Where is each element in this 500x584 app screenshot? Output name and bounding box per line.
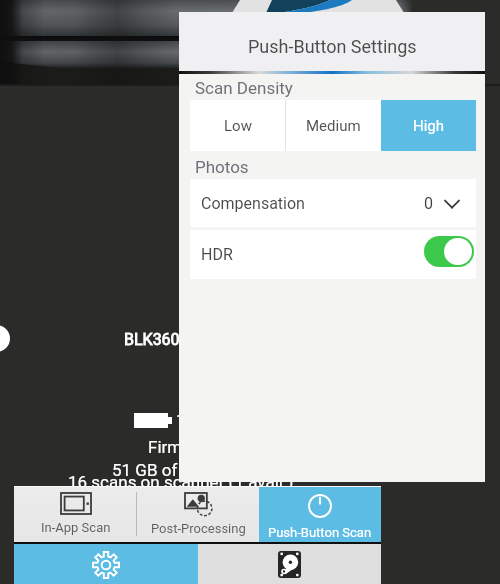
button[interactable]: Push-Button Scan [259, 486, 381, 542]
button[interactable]: HDR toggle [424, 236, 474, 267]
button[interactable]: Compensation [190, 179, 476, 227]
staticText: HDR [201, 245, 233, 264]
staticText: BLK3600 [124, 330, 189, 349]
staticText: Post-Processing [151, 521, 246, 536]
staticText: 0 [424, 194, 433, 213]
button[interactable]: Medium [286, 100, 381, 151]
staticText: Low [224, 117, 252, 135]
staticText: Compensation [201, 194, 305, 213]
staticText: 100% [176, 410, 218, 430]
staticText: 16 scans on scanner (1 avail.) [68, 472, 294, 492]
button[interactable]: Storage [198, 544, 381, 584]
staticText: Push-Button Scan [268, 525, 372, 540]
staticText: Push-Button Settings [248, 36, 417, 57]
button[interactable]: In-App Scan [14, 486, 137, 542]
button[interactable]: HDR [190, 230, 476, 279]
button[interactable]: Post-Processing [137, 486, 259, 542]
button[interactable]: Settings [14, 544, 198, 584]
staticText: Photos [195, 157, 249, 177]
staticText: Scan Density [195, 78, 293, 98]
button[interactable]: High [381, 100, 476, 151]
staticText: High [413, 117, 445, 135]
staticText: Medium [306, 117, 361, 135]
staticText: In-App Scan [41, 520, 111, 535]
staticText: Firmware 1.0.3 [148, 437, 261, 457]
staticText: 51 GB of space free [112, 460, 261, 480]
button[interactable]: Low [190, 100, 285, 151]
